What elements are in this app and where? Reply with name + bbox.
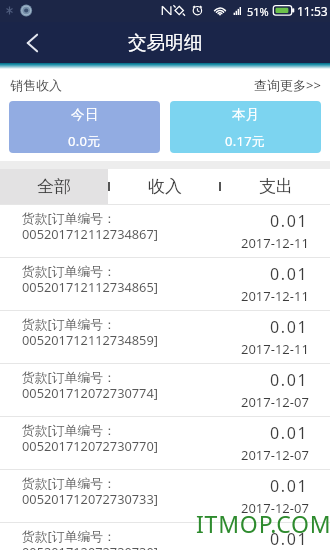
button[interactable]: 本月 — [170, 101, 321, 153]
staticText: 查询更多>> — [254, 76, 321, 94]
staticText: 货款[订单编号： 005201712072730774] — [22, 368, 158, 402]
staticText: 交易明细 — [128, 31, 203, 54]
staticText: ITMOP.COM — [196, 508, 330, 539]
button[interactable]: 货款[订单编号： 005201712112734865] — [0, 258, 330, 311]
staticText: 收入 — [148, 176, 182, 197]
staticText: 11:53 — [297, 3, 328, 19]
staticText: 2017-12-11 — [241, 287, 309, 305]
staticText: 今日 — [71, 106, 99, 123]
button[interactable]: 货款[订单编号： 005201712112734867] — [0, 205, 330, 258]
button[interactable]: 收入 — [110, 169, 219, 204]
staticText: 2017-12-07 — [241, 446, 309, 464]
button[interactable]: 今日 — [9, 101, 160, 153]
button[interactable]: 货款[订单编号： 005201712072730774] — [0, 364, 330, 417]
staticText: 0.01 — [270, 528, 309, 550]
staticText: 2017-12-07 — [241, 393, 309, 411]
staticText: 0.01 — [270, 369, 309, 391]
staticText: 货款[订单编号： 005201712072730770] — [22, 421, 158, 455]
staticText: 0.17元 — [225, 132, 266, 150]
staticText: 货款[订单编号： 005201712112734865] — [22, 262, 158, 296]
staticText: 2017-12-07 — [241, 499, 309, 517]
staticText: 0.01 — [270, 475, 309, 497]
staticText: 货款[订单编号： 005201712072730733] — [22, 474, 158, 508]
staticText: 本月 — [232, 106, 260, 123]
staticText: 2017-12-11 — [241, 234, 309, 252]
staticText: 货款[订单编号： 005201712112734867] — [22, 209, 158, 243]
staticText: 支出 — [259, 176, 293, 197]
staticText: 货款[订单编号： 005201712072730730] — [22, 527, 158, 550]
staticText: 51% — [247, 4, 269, 19]
staticText: 0.01 — [270, 316, 309, 338]
staticText: 销售收入 — [10, 77, 62, 93]
button[interactable]: 支出 — [221, 169, 330, 204]
button[interactable]: 货款[订单编号： 005201712112734859] — [0, 311, 330, 364]
button[interactable]: Back — [18, 30, 44, 56]
staticText: 0.01 — [270, 422, 309, 444]
button[interactable]: 查询更多>> — [254, 76, 321, 94]
button[interactable]: 货款[订单编号： 005201712072730730] — [0, 523, 330, 550]
button[interactable]: 全部 — [0, 169, 108, 204]
staticText: 0.01 — [270, 263, 309, 285]
staticText: 2017-12-11 — [241, 340, 309, 358]
staticText: 0.0元 — [68, 132, 101, 150]
staticText: 货款[订单编号： 005201712112734859] — [22, 315, 158, 349]
staticText: 全部 — [37, 176, 71, 197]
staticText: 0.01 — [270, 210, 309, 232]
button[interactable]: 货款[订单编号： 005201712072730733] — [0, 470, 330, 523]
button[interactable]: 货款[订单编号： 005201712072730770] — [0, 417, 330, 470]
